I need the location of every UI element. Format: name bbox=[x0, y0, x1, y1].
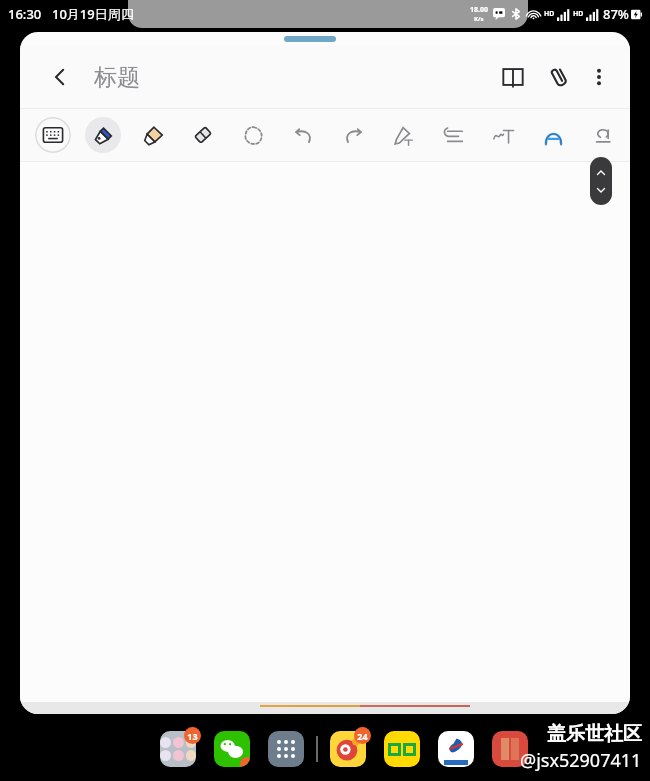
button[interactable]: Undo bbox=[285, 117, 321, 153]
button[interactable]: Text pen bbox=[385, 117, 421, 153]
staticText: 87% bbox=[603, 5, 629, 23]
button[interactable]: Convert to text bbox=[485, 117, 521, 153]
button[interactable]: Redo bbox=[335, 117, 371, 153]
button[interactable]: App bbox=[382, 729, 422, 769]
button[interactable]: App bbox=[436, 729, 476, 769]
staticText: 16:30 bbox=[8, 5, 42, 23]
staticText: 24 bbox=[357, 730, 368, 742]
button[interactable]: Keyboard bbox=[35, 117, 71, 153]
staticText: 13 bbox=[187, 730, 198, 742]
button[interactable]: Back bbox=[36, 53, 84, 101]
button[interactable]: Page navigation bbox=[590, 157, 612, 205]
staticText: HD bbox=[544, 9, 555, 19]
button[interactable]: Lasso select bbox=[235, 117, 271, 153]
button[interactable]: Reading mode bbox=[490, 54, 536, 100]
staticText: 盖乐世社区 bbox=[547, 722, 642, 746]
button[interactable]: Pen bbox=[85, 117, 121, 153]
button[interactable]: Attach bbox=[536, 54, 582, 100]
button[interactable]: Align bbox=[435, 117, 471, 153]
button[interactable]: Eraser bbox=[185, 117, 221, 153]
button[interactable]: App bbox=[266, 729, 306, 769]
button[interactable]: App bbox=[490, 729, 530, 769]
staticText: HD bbox=[573, 9, 584, 19]
button[interactable]: More options bbox=[578, 56, 620, 98]
staticText: @jsx52907411 bbox=[520, 748, 642, 773]
button[interactable]: App bbox=[158, 729, 198, 769]
button[interactable]: Highlighter bbox=[135, 117, 171, 153]
staticText: K/s bbox=[474, 15, 484, 23]
button[interactable]: More text bbox=[585, 117, 621, 153]
button[interactable]: App bbox=[212, 729, 252, 769]
button[interactable]: Shape recognition bbox=[535, 117, 571, 153]
button[interactable]: App bbox=[328, 729, 368, 769]
staticText: 10月19日周四 bbox=[52, 5, 134, 23]
staticText: 18.00 bbox=[470, 5, 488, 15]
staticText: 标题 bbox=[94, 63, 140, 92]
button[interactable]: 标题 bbox=[94, 63, 140, 92]
